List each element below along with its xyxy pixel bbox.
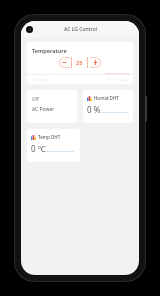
staticText: Auto mode (107, 77, 128, 82)
button[interactable]: 25 (72, 57, 87, 68)
button[interactable]: Increase temperature (88, 57, 103, 68)
staticText: Temp DHT (38, 134, 61, 140)
staticText: Off (32, 96, 39, 102)
staticText: Set temp (32, 77, 49, 82)
staticText: Humid DHT (94, 95, 119, 101)
staticText: 25 (76, 59, 83, 66)
button[interactable]: Temperature (27, 42, 133, 84)
button[interactable]: Humid DHT (83, 90, 133, 123)
staticText: AC Power (32, 106, 55, 113)
button[interactable]: Temp DHT (27, 129, 80, 162)
button[interactable]: Decrease temperature (57, 57, 71, 68)
button[interactable]: Off (27, 90, 77, 123)
staticText: AC LG Control (64, 26, 97, 33)
staticText: 0 % (87, 104, 101, 115)
staticText: 0 ℃ (31, 143, 46, 154)
staticText: Temperature (32, 47, 67, 54)
